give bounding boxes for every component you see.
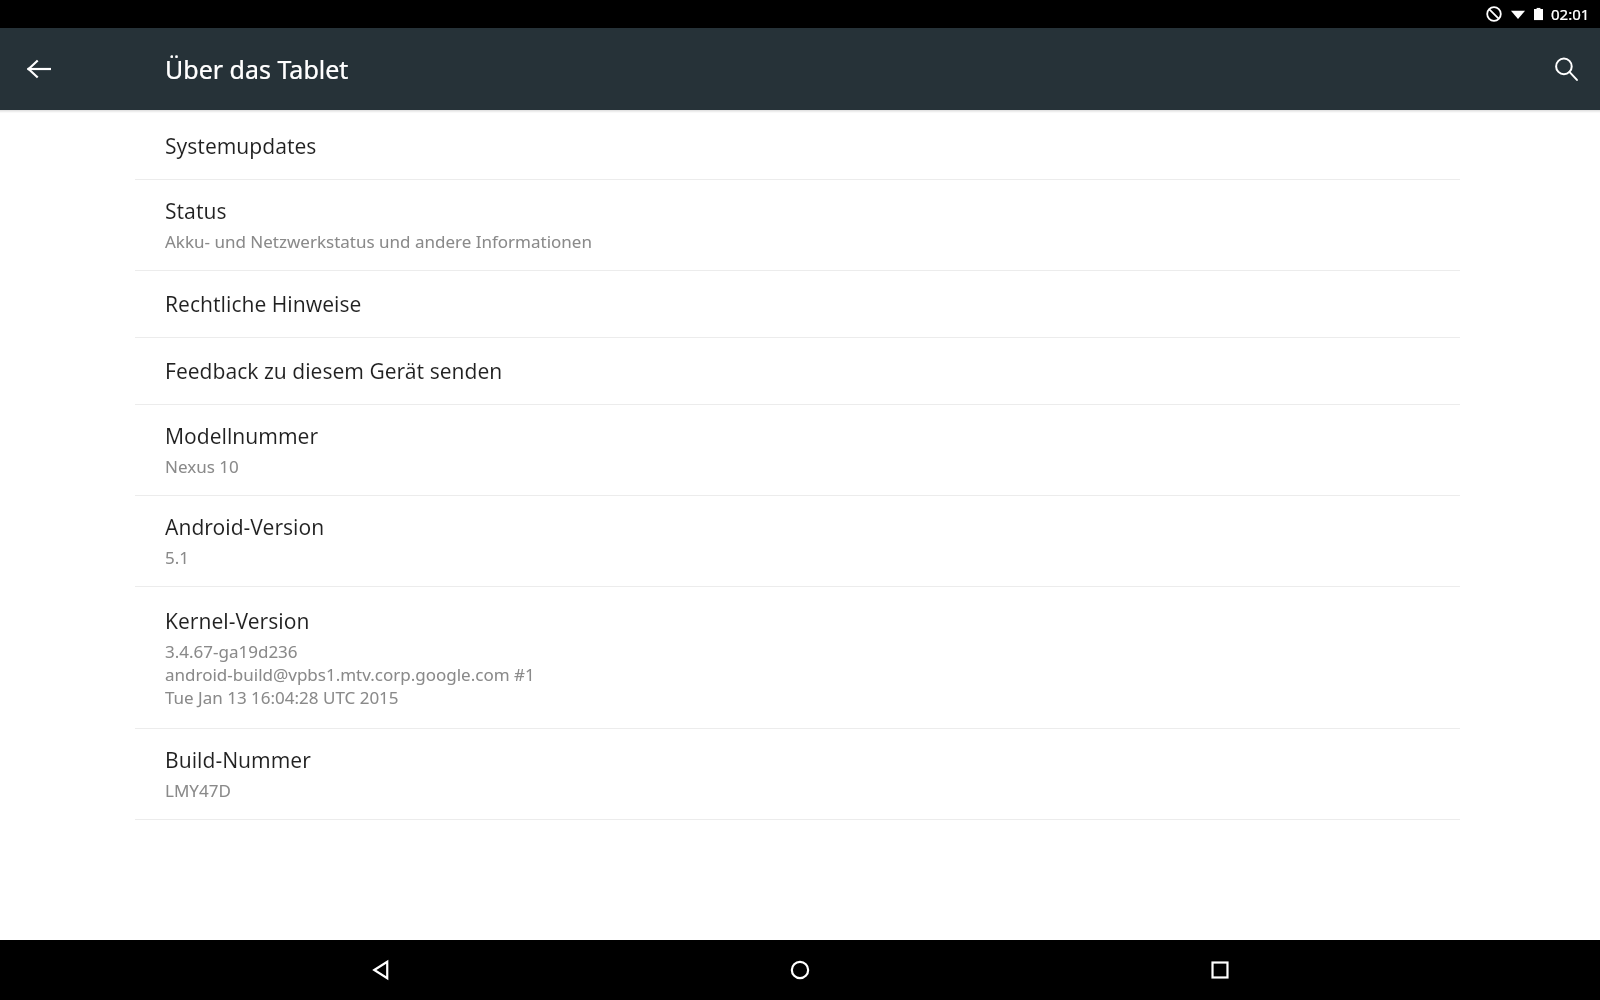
staticText: Nexus 10 xyxy=(165,455,239,478)
staticText: Tue Jan 13 16:04:28 UTC 2015 xyxy=(165,686,399,709)
staticText: 02:01 xyxy=(1551,4,1590,24)
staticText: Systemupdates xyxy=(165,132,317,161)
button[interactable]: Kernel-Version xyxy=(0,587,1600,728)
staticText: Status xyxy=(165,197,227,226)
staticText: Build-Nummer xyxy=(165,746,311,775)
staticText: Kernel-Version xyxy=(165,607,310,636)
button[interactable]: Systemupdates xyxy=(0,113,1600,179)
button[interactable]: Status xyxy=(0,180,1600,270)
staticText: Android-Version xyxy=(165,513,325,542)
staticText: LMY47D xyxy=(165,779,231,802)
button[interactable]: Back xyxy=(342,940,420,1000)
staticText: Feedback zu diesem Gerät senden xyxy=(165,357,503,386)
button[interactable]: Build-Nummer xyxy=(0,729,1600,819)
button[interactable]: Search xyxy=(1540,43,1592,95)
staticText: Akku- und Netzwerkstatus und andere Info… xyxy=(165,230,592,253)
staticText: 5.1 xyxy=(165,546,190,569)
staticText: android-build@vpbs1.mtv.corp.google.com … xyxy=(165,663,535,686)
staticText: 3.4.67-ga19d236 xyxy=(165,640,298,663)
button[interactable]: Rechtliche Hinweise xyxy=(0,271,1600,337)
button[interactable]: Android-Version xyxy=(0,496,1600,586)
staticText: Rechtliche Hinweise xyxy=(165,290,362,319)
staticText: Modellnummer xyxy=(165,422,319,451)
button[interactable]: Recent apps xyxy=(1181,940,1259,1000)
button[interactable]: Back xyxy=(14,44,64,94)
button[interactable]: Home xyxy=(761,940,839,1000)
button[interactable]: Modellnummer xyxy=(0,405,1600,495)
button[interactable]: Feedback zu diesem Gerät senden xyxy=(0,338,1600,404)
staticText: Über das Tablet xyxy=(165,52,349,86)
